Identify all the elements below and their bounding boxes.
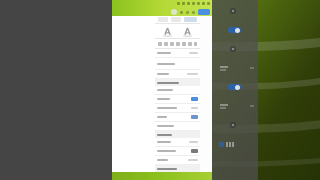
button[interactable]: Action	[186, 11, 189, 14]
button[interactable]	[155, 156, 200, 164]
button[interactable]: Font preview	[161, 26, 174, 37]
button[interactable]: Format option	[170, 42, 174, 46]
button[interactable]	[155, 95, 200, 103]
button[interactable]: Toolbar action	[182, 2, 185, 5]
button[interactable]: Share	[198, 9, 210, 15]
button[interactable]: Account	[171, 9, 177, 15]
button[interactable]: Toolbar action	[202, 2, 205, 5]
button[interactable]	[155, 122, 200, 130]
button[interactable]	[155, 70, 200, 78]
button[interactable]: Toolbar action	[197, 2, 200, 5]
button[interactable]: Setting	[218, 101, 254, 111]
button[interactable]: Toolbar action	[207, 2, 210, 5]
button[interactable]	[155, 138, 200, 146]
button[interactable]: Format option	[194, 42, 197, 46]
button[interactable]: Format option	[182, 42, 186, 46]
button[interactable]: Setting	[218, 25, 254, 35]
button[interactable]: Setting	[218, 82, 254, 92]
button[interactable]: Format option	[176, 42, 180, 46]
button[interactable]: Setting	[218, 6, 254, 16]
button[interactable]: Action	[192, 11, 195, 14]
button[interactable]: Setting	[218, 44, 254, 54]
button[interactable]	[155, 147, 200, 155]
button[interactable]: Format option	[158, 42, 162, 46]
button[interactable]: Font preview	[181, 26, 194, 37]
button[interactable]: Toolbar action	[187, 2, 190, 5]
button[interactable]: Format option	[188, 42, 192, 46]
button[interactable]	[155, 58, 200, 69]
button[interactable]: Action	[180, 11, 183, 14]
button[interactable]: Setting	[218, 120, 254, 130]
button[interactable]: Format option	[164, 42, 168, 46]
button[interactable]: Setting	[218, 63, 254, 73]
button[interactable]: Toolbar action	[192, 2, 195, 5]
button[interactable]	[155, 49, 200, 57]
button[interactable]	[155, 86, 200, 94]
button[interactable]	[155, 113, 200, 121]
button[interactable]: Setting	[218, 139, 254, 149]
button[interactable]: Toolbar action	[177, 2, 180, 5]
button[interactable]	[155, 104, 200, 112]
